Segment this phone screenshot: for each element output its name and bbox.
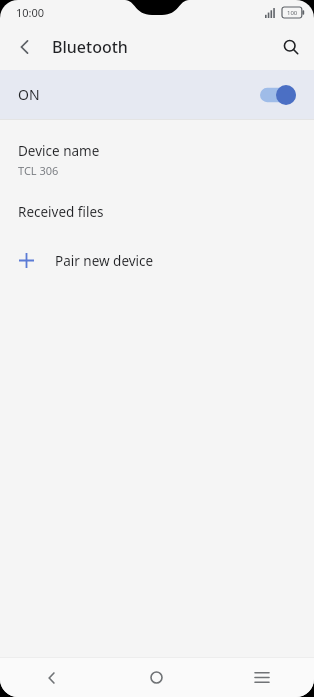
- button[interactable]: Search: [272, 28, 310, 66]
- staticText: Received files: [18, 203, 104, 221]
- button[interactable]: Pair new device: [0, 236, 314, 285]
- button[interactable]: Recent apps: [209, 658, 314, 697]
- staticText: Pair new device: [55, 252, 154, 270]
- button[interactable]: ON: [0, 70, 314, 119]
- button[interactable]: Back: [6, 28, 44, 66]
- button[interactable]: Back: [0, 658, 104, 697]
- staticText: Device name: [18, 142, 100, 160]
- button[interactable]: Received files: [0, 188, 314, 236]
- staticText: 100: [287, 9, 298, 17]
- staticText: TCL 306: [18, 163, 59, 178]
- staticText: Bluetooth: [52, 36, 128, 58]
- staticText: 10:00: [16, 5, 45, 20]
- button[interactable]: Home: [104, 658, 209, 697]
- staticText: ON: [18, 85, 40, 104]
- button[interactable]: Device name: [0, 128, 314, 188]
